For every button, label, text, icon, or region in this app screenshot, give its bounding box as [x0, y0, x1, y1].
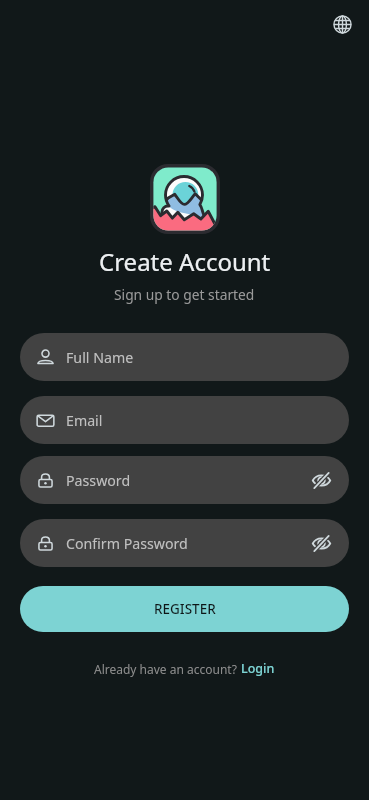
staticText: Already have an account? [94, 661, 241, 677]
staticText: Confirm Password [66, 534, 188, 553]
button[interactable]: Email [20, 396, 349, 444]
staticText: Login [241, 660, 275, 677]
staticText: Sign up to get started [114, 285, 255, 304]
button[interactable]: REGISTER [20, 586, 349, 632]
button[interactable]: Change language [326, 8, 358, 40]
button[interactable]: Show password [308, 530, 334, 556]
button[interactable]: Confirm Password [20, 519, 349, 567]
staticText: REGISTER [154, 600, 216, 618]
staticText: Create Account [99, 245, 271, 278]
button[interactable]: Password [20, 456, 349, 504]
button[interactable]: Show password [308, 467, 334, 493]
staticText: Password [66, 471, 131, 490]
button[interactable]: Login [241, 660, 275, 677]
staticText: Full Name [66, 348, 134, 367]
button[interactable]: Full Name [20, 333, 349, 381]
staticText: Email [66, 411, 103, 430]
